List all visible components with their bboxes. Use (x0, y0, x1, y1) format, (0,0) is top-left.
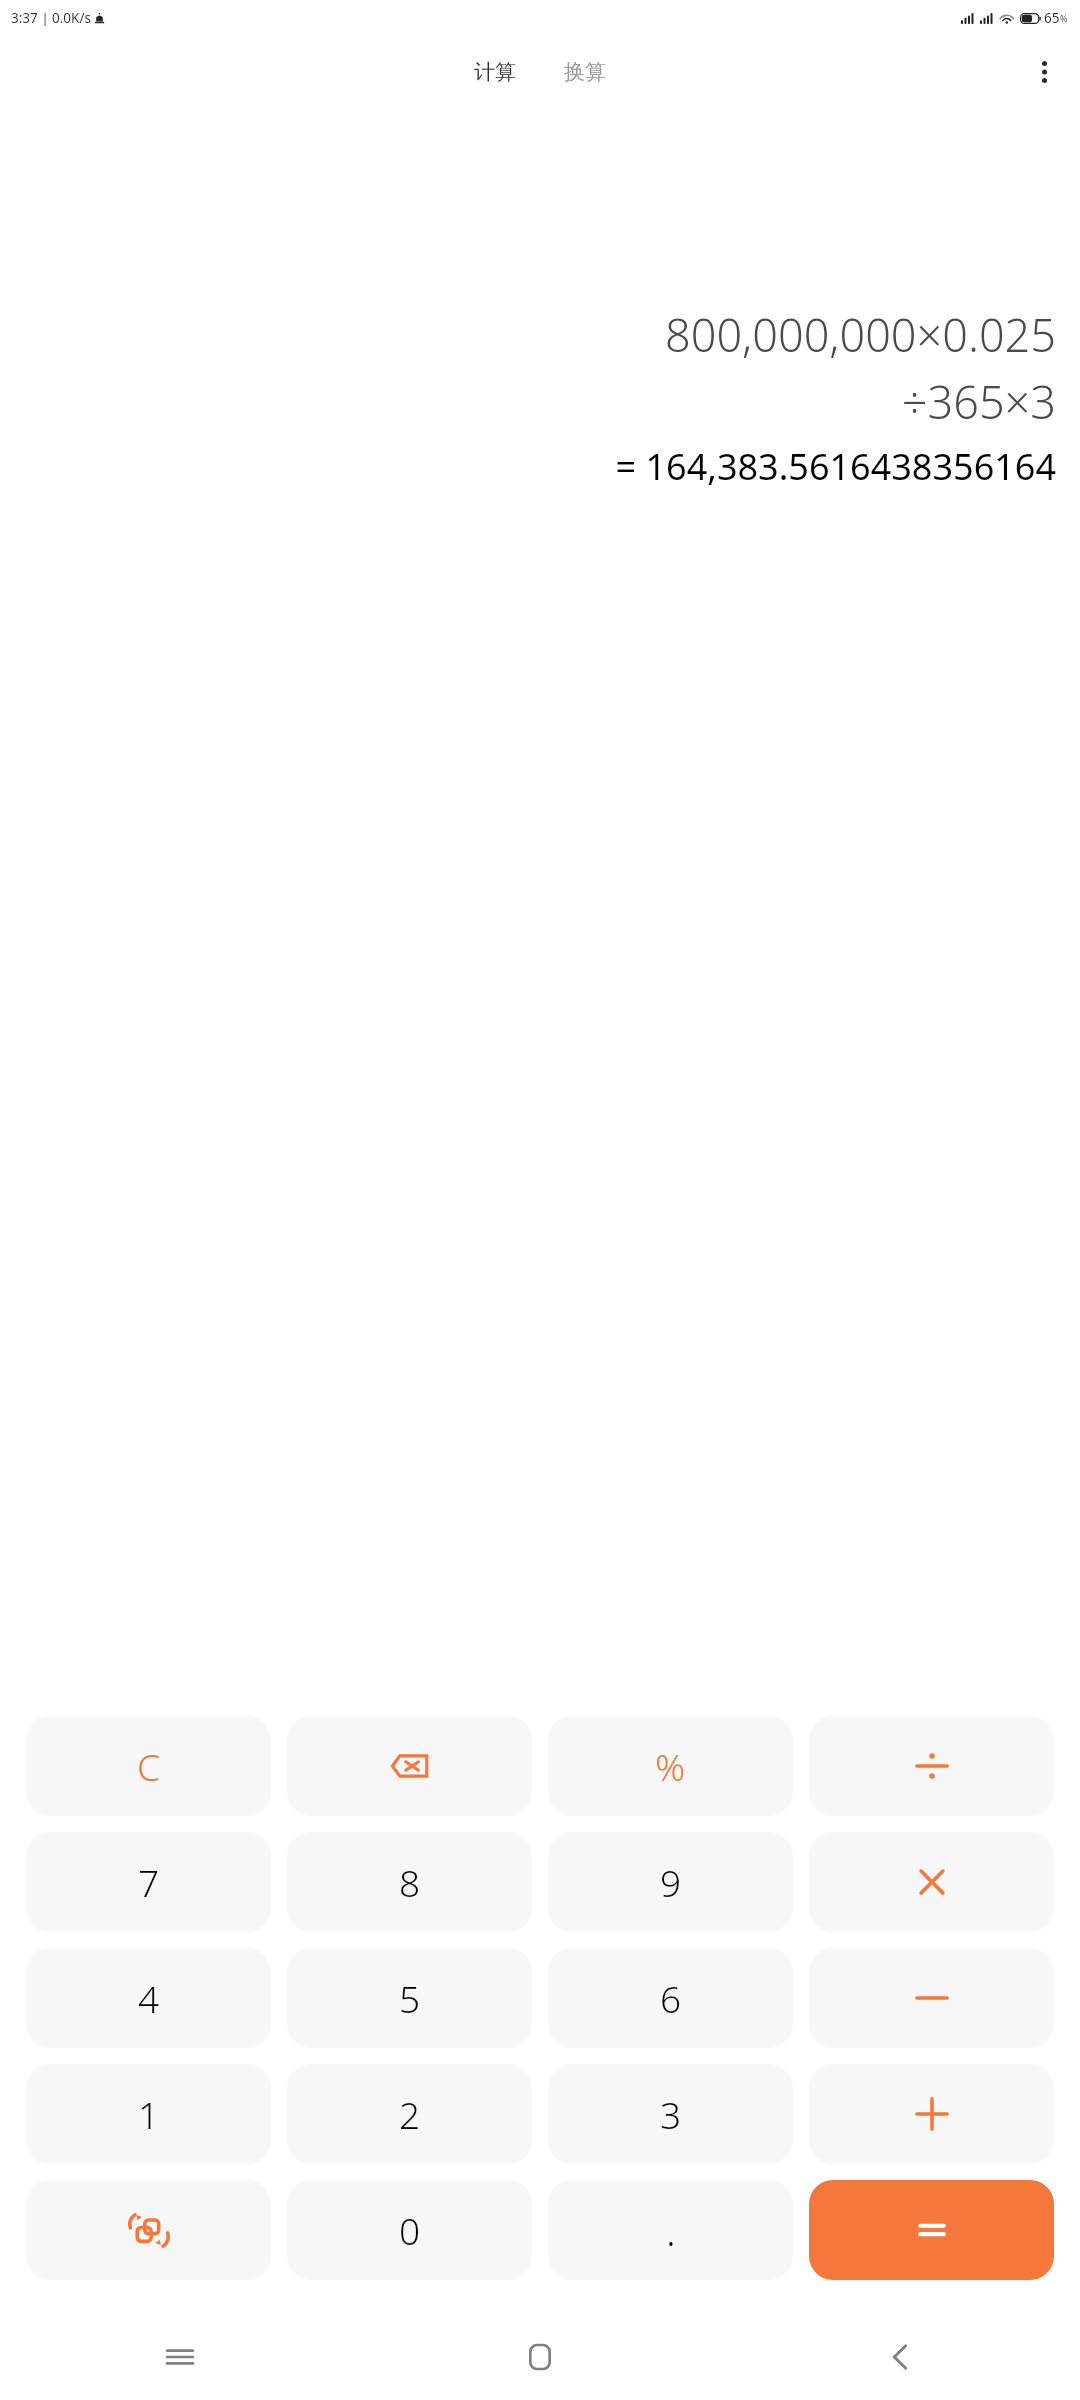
staticText: 0.0K/s (52, 9, 91, 27)
staticText: 2 (399, 2089, 421, 2139)
staticText: 9 (660, 1857, 682, 1907)
button[interactable]: C (26, 1716, 271, 1816)
staticText: . (666, 2203, 676, 2257)
button[interactable]: Home (360, 2314, 720, 2400)
staticText: % (655, 1741, 686, 1791)
staticText: 3 (660, 2089, 682, 2139)
staticText: 1 (138, 2089, 160, 2139)
staticText: 6 (660, 1973, 682, 2023)
staticText: 65 (1044, 9, 1060, 27)
button[interactable]: . (548, 2180, 793, 2280)
button[interactable]: Backspace (287, 1716, 532, 1816)
staticText: 7 (138, 1857, 160, 1907)
staticText: C (137, 1741, 161, 1791)
button[interactable]: 0 (287, 2180, 532, 2280)
button[interactable]: Plus (809, 2064, 1054, 2164)
button[interactable]: % (548, 1716, 793, 1816)
button[interactable]: Equals (809, 2180, 1054, 2280)
button[interactable]: More options (1022, 50, 1066, 94)
button[interactable]: 4 (26, 1948, 271, 2048)
button[interactable]: 5 (287, 1948, 532, 2048)
staticText: ÷365×3 (24, 371, 1056, 432)
staticText: = 164,383.5616438356164 (24, 442, 1056, 491)
button[interactable]: Convert units (26, 2180, 271, 2280)
staticText: 3:37 (11, 9, 38, 27)
staticText: 5 (399, 1973, 421, 2023)
button[interactable]: Divide (809, 1716, 1054, 1816)
button[interactable]: 2 (287, 2064, 532, 2164)
button[interactable]: Multiply (809, 1832, 1054, 1932)
button[interactable]: 9 (548, 1832, 793, 1932)
staticText: 计算 (474, 59, 516, 85)
button[interactable]: Minus (809, 1948, 1054, 2048)
staticText: | (38, 9, 52, 27)
button[interactable]: 换算 (554, 53, 616, 91)
button[interactable]: 7 (26, 1832, 271, 1932)
button[interactable]: Back (720, 2314, 1080, 2400)
staticText: 换算 (564, 59, 606, 85)
staticText: % (1060, 12, 1068, 24)
staticText: 800,000,000×0.025 (24, 304, 1056, 365)
button[interactable]: 计算 (464, 53, 526, 91)
button[interactable]: 1 (26, 2064, 271, 2164)
staticText: 4 (138, 1973, 160, 2023)
button[interactable]: 3 (548, 2064, 793, 2164)
button[interactable]: 6 (548, 1948, 793, 2048)
button[interactable]: 8 (287, 1832, 532, 1932)
button[interactable]: Recents (0, 2314, 360, 2400)
staticText: 8 (399, 1857, 421, 1907)
staticText: 0 (399, 2205, 421, 2255)
